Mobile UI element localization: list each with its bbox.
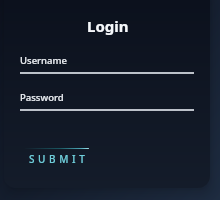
button[interactable]: SUBMIT (24, 148, 89, 166)
staticText: Password (20, 91, 64, 104)
button[interactable]: Password (20, 91, 194, 111)
staticText: Login (87, 16, 129, 36)
button[interactable]: Username (20, 54, 194, 74)
staticText: Username (20, 54, 67, 67)
staticText: SUBMIT (29, 152, 89, 166)
